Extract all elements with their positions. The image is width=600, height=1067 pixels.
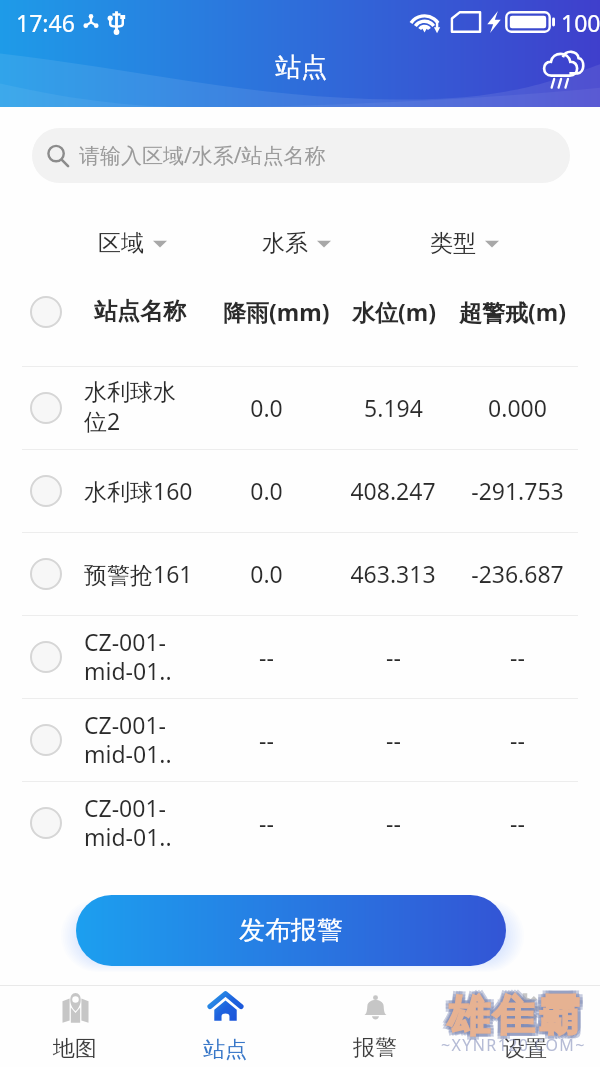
staticText: 雄隹霸	[446, 990, 581, 1043]
staticText: 100	[561, 7, 600, 38]
staticText: 水利球水 位2	[84, 378, 176, 437]
staticText: 雄隹霸	[446, 993, 581, 1046]
button[interactable]: Select station	[0, 366, 600, 449]
button[interactable]: 报警	[300, 986, 450, 1067]
staticText: 雄隹霸	[446, 987, 581, 1040]
button[interactable]: 请输入区域/水系/站点名称	[32, 128, 570, 183]
staticText: --	[259, 807, 274, 838]
staticText: -291.753	[471, 475, 564, 506]
staticText: 雄隹霸	[449, 990, 584, 1043]
staticText: 0.0	[250, 392, 283, 423]
button[interactable]: Select station	[30, 641, 62, 673]
staticText: 发布报警	[239, 914, 343, 947]
staticText: 雄隹霸	[449, 993, 584, 1046]
button[interactable]: Select station	[30, 475, 62, 507]
staticText: 水位(m)	[352, 296, 437, 327]
button[interactable]: Select station	[0, 781, 600, 864]
staticText: CZ-001- mid-01..	[84, 626, 172, 687]
button[interactable]: 设置	[450, 986, 600, 1067]
staticText: CZ-001- mid-01..	[84, 709, 172, 770]
staticText: 水系	[262, 229, 308, 258]
button[interactable]: 站点	[150, 986, 300, 1067]
button[interactable]: Select station	[30, 807, 62, 839]
staticText: 请输入区域/水系/站点名称	[79, 141, 326, 170]
staticText: 雄隹霸	[449, 987, 584, 1040]
staticText: --	[386, 724, 401, 755]
button[interactable]: Select station	[30, 392, 62, 424]
staticText: --	[510, 724, 525, 755]
staticText: --	[510, 807, 525, 838]
button[interactable]: Select station	[30, 558, 62, 590]
button[interactable]: Select station	[0, 698, 600, 781]
staticText: 水利球160	[84, 475, 193, 506]
staticText: 站点名称	[94, 297, 186, 326]
staticText: CZ-001- mid-01..	[84, 792, 172, 853]
staticText: 0.0	[250, 475, 283, 506]
button[interactable]: 区域	[98, 229, 167, 258]
staticText: 雄隹霸	[443, 990, 578, 1043]
button[interactable]: Select station	[0, 449, 600, 532]
staticText: --	[259, 641, 274, 672]
staticText: ~XYNR120.COM~	[441, 1034, 586, 1056]
staticText: 17:46	[16, 7, 75, 38]
staticText: 区域	[98, 229, 144, 258]
button[interactable]: 地图	[0, 986, 150, 1067]
staticText: --	[510, 641, 525, 672]
button[interactable]: Weather	[536, 42, 588, 94]
staticText: 站点	[203, 1036, 247, 1064]
staticText: 报警	[353, 1034, 397, 1062]
staticText: --	[259, 724, 274, 755]
button[interactable]: Select station	[0, 615, 600, 698]
staticText: 雄隹霸	[443, 993, 578, 1046]
staticText: 预警抢161	[84, 558, 193, 589]
staticText: 站点	[275, 51, 327, 84]
button[interactable]: 发布报警	[76, 895, 506, 966]
staticText: 类型	[430, 229, 476, 258]
staticText: 地图	[53, 1035, 97, 1063]
staticText: 5.194	[364, 392, 423, 423]
button[interactable]: 类型	[430, 229, 499, 258]
staticText: 463.313	[350, 558, 436, 589]
staticText: -236.687	[471, 558, 564, 589]
button[interactable]: Select station	[0, 532, 600, 615]
button[interactable]: Select station	[30, 724, 62, 756]
staticText: --	[386, 641, 401, 672]
staticText: 降雨(mm)	[223, 296, 330, 327]
staticText: 雄隹霸	[446, 990, 581, 1043]
staticText: --	[386, 807, 401, 838]
staticText: 408.247	[350, 475, 436, 506]
staticText: 雄隹霸	[443, 987, 578, 1040]
staticText: 0.000	[488, 392, 547, 423]
button[interactable]: 水系	[262, 229, 331, 258]
staticText: 0.0	[250, 558, 283, 589]
staticText: 设置	[503, 1035, 547, 1063]
button[interactable]: Select all stations	[30, 296, 62, 328]
staticText: 超警戒(m)	[459, 296, 567, 327]
